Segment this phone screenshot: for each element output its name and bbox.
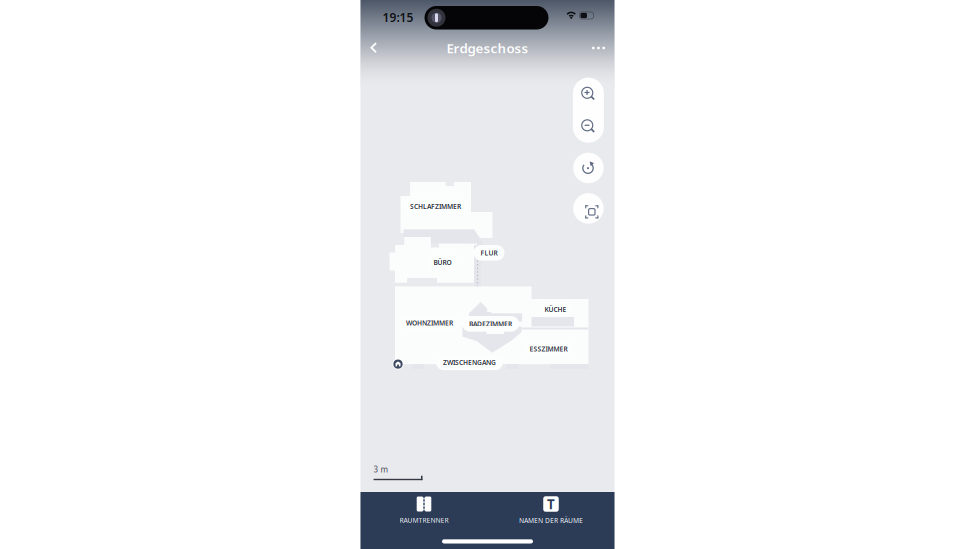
- staticText: Erdgeschoss: [446, 39, 528, 57]
- button[interactable]: Rotate: [573, 153, 604, 183]
- staticText: BADEZIMMER: [469, 319, 512, 328]
- staticText: T: [547, 495, 555, 513]
- button[interactable]: T: [487, 496, 614, 525]
- staticText: RAUMTRENNER: [399, 516, 448, 525]
- button[interactable]: Zoom out: [573, 110, 604, 143]
- staticText: 3 m: [373, 464, 388, 475]
- staticText: SCHLAFZIMMER: [410, 202, 461, 211]
- button[interactable]: More options: [585, 35, 611, 61]
- button[interactable]: Fit to screen: [573, 193, 604, 224]
- staticText: KÜCHE: [544, 305, 566, 314]
- button[interactable]: RAUMTRENNER: [360, 496, 487, 525]
- staticText: ESSZIMMER: [529, 344, 567, 353]
- button[interactable]: Zoom in: [573, 78, 604, 110]
- button[interactable]: Back: [360, 35, 386, 61]
- staticText: ZWISCHENGANG: [443, 358, 496, 367]
- staticText: FLUR: [480, 248, 497, 257]
- staticText: WOHNZIMMER: [406, 318, 453, 327]
- staticText: BÜRO: [433, 258, 451, 267]
- staticText: NAMEN DER RÄUME: [519, 516, 583, 525]
- staticText: 19:15: [382, 9, 413, 25]
